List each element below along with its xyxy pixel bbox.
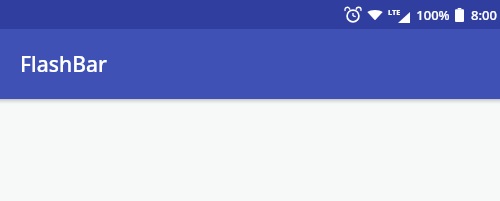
staticText: 100% bbox=[416, 6, 450, 24]
staticText: FlashBar bbox=[20, 50, 107, 79]
staticText: LTE bbox=[388, 7, 401, 17]
button[interactable]: FlashBar bbox=[0, 29, 500, 99]
staticText: 8:00 bbox=[471, 6, 497, 24]
